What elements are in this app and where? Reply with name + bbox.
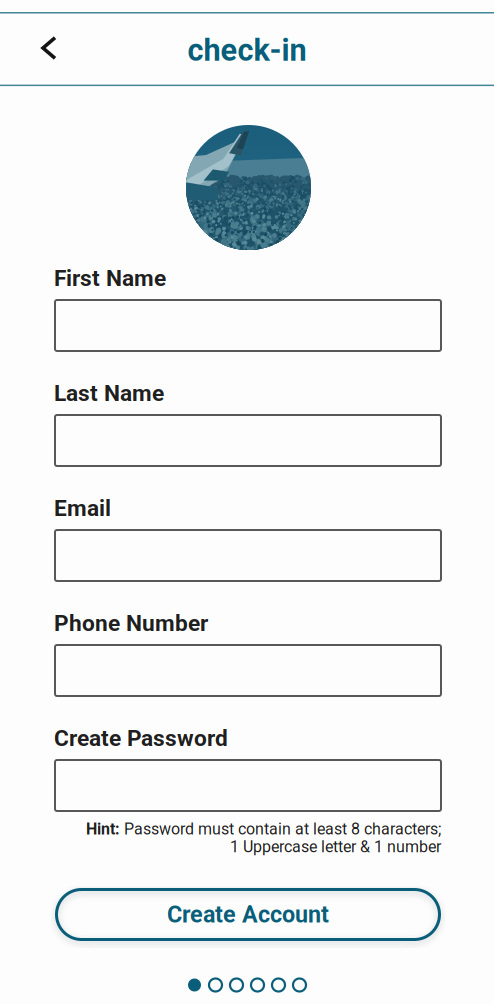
staticText: Phone Number (54, 610, 208, 637)
button[interactable] (55, 300, 441, 351)
staticText: 1 Uppercase letter & 1 number (230, 837, 441, 856)
button[interactable] (55, 760, 441, 811)
staticText: Create Password (54, 725, 228, 752)
staticText: First Name (54, 265, 166, 292)
staticText: Hint: Password must contain at least 8 c… (86, 820, 441, 838)
staticText: Email (54, 495, 111, 522)
button[interactable] (55, 530, 441, 581)
button[interactable] (55, 645, 441, 696)
button[interactable]: Back (18, 12, 80, 83)
button[interactable] (55, 415, 441, 466)
staticText: Last Name (54, 380, 164, 407)
staticText: check-in (187, 32, 306, 68)
staticText: Create Account (167, 901, 329, 928)
button[interactable]: Create Account (56, 889, 439, 939)
